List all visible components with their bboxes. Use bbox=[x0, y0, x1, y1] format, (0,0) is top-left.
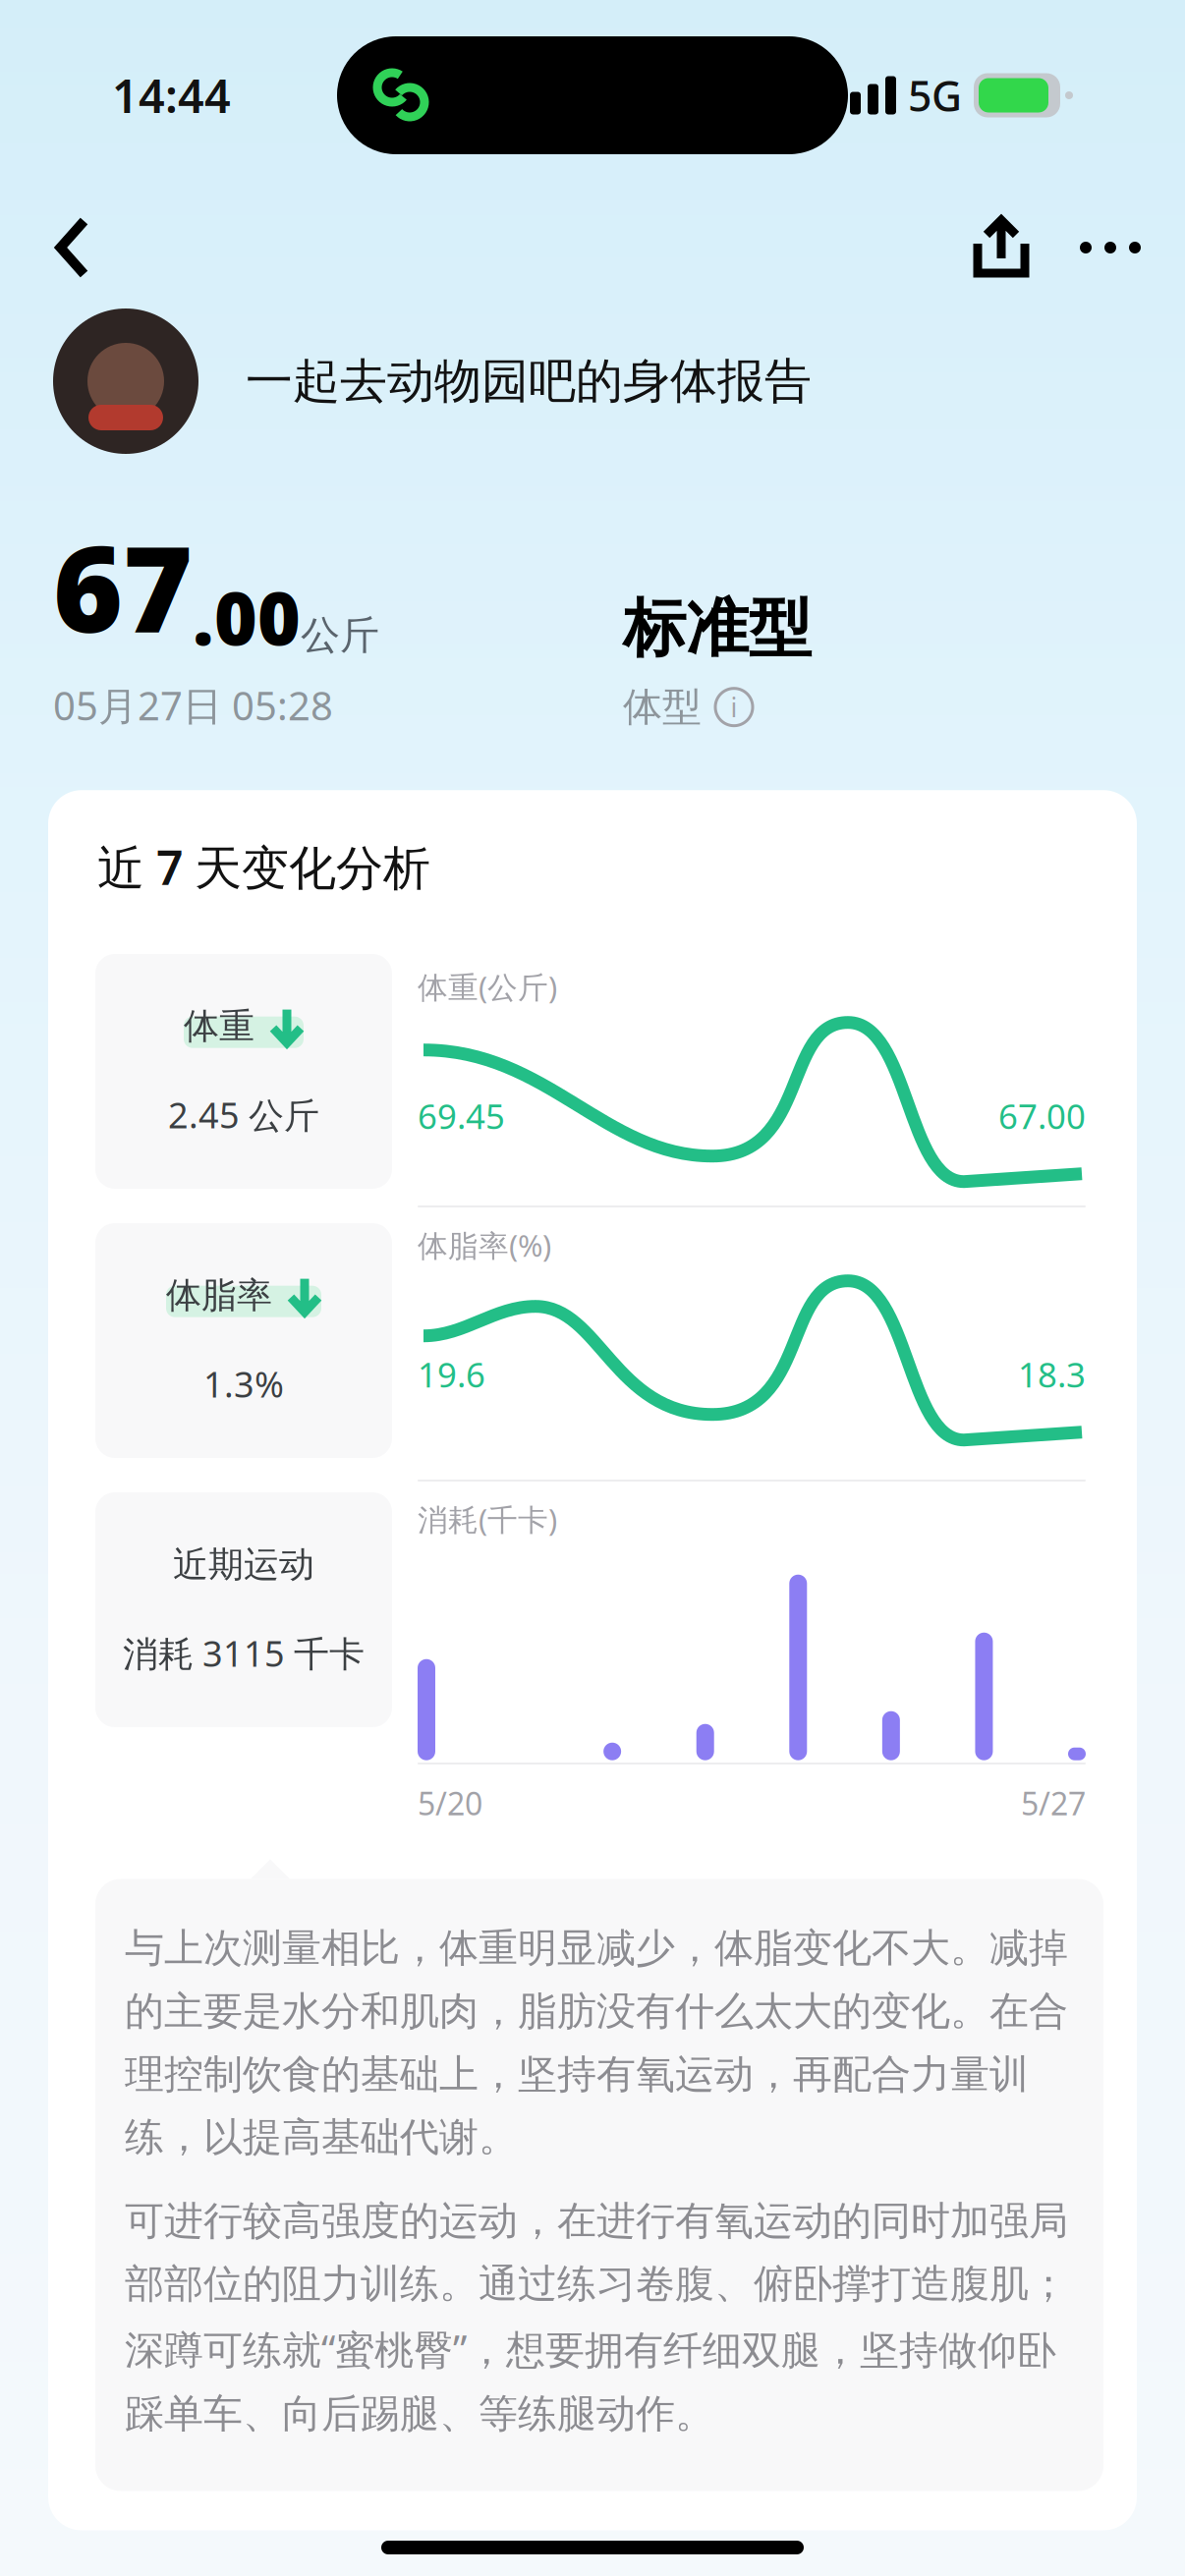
staticText: 19.6 bbox=[418, 1352, 485, 1397]
staticText: 可进行较高强度的运动，在进行有氧运动的同时加强局部部位的阻力训练。通过练习卷腹、… bbox=[125, 2197, 1068, 2438]
staticText: 5/20 bbox=[418, 1782, 482, 1824]
staticText: 5G bbox=[908, 67, 962, 123]
staticText: 消耗(千卡) bbox=[418, 1499, 557, 1539]
staticText: 体脂率(%) bbox=[418, 1225, 551, 1265]
staticText: i bbox=[731, 690, 737, 724]
staticText: 体脂率 bbox=[166, 1274, 272, 1317]
staticText: 67.00 bbox=[998, 1093, 1086, 1138]
staticText: 14:44 bbox=[112, 65, 231, 126]
button[interactable]: More options bbox=[1055, 196, 1165, 299]
staticText: 体型 bbox=[623, 683, 702, 731]
staticText: 与上次测量相比，体重明显减少，体脂变化不大。减掉的主要是水分和肌肉，脂肪没有什么… bbox=[125, 1924, 1068, 2161]
staticText: 05月27日 05:28 bbox=[53, 679, 333, 731]
staticText: .00 bbox=[193, 568, 301, 665]
staticText: 体重(公斤) bbox=[418, 967, 557, 1007]
staticText: 5/27 bbox=[1021, 1782, 1086, 1824]
button[interactable]: Back bbox=[18, 196, 128, 299]
staticText: 近 7 天变化分析 bbox=[97, 835, 430, 898]
staticText: 69.45 bbox=[418, 1093, 505, 1138]
staticText: 一起去动物园吧的身体报告 bbox=[246, 352, 812, 410]
staticText: 67 bbox=[53, 507, 193, 665]
staticText: 公斤 bbox=[301, 611, 379, 659]
staticText: 体重 bbox=[184, 1005, 254, 1048]
staticText: 18.3 bbox=[1018, 1352, 1086, 1397]
staticText: 消耗 3115 千卡 bbox=[123, 1630, 365, 1677]
staticText: 近期运动 bbox=[173, 1543, 314, 1586]
button[interactable]: Share bbox=[947, 196, 1055, 299]
staticText: 2.45 公斤 bbox=[168, 1091, 319, 1138]
staticText: 标准型 bbox=[623, 590, 812, 667]
staticText: 1.3% bbox=[203, 1360, 284, 1407]
